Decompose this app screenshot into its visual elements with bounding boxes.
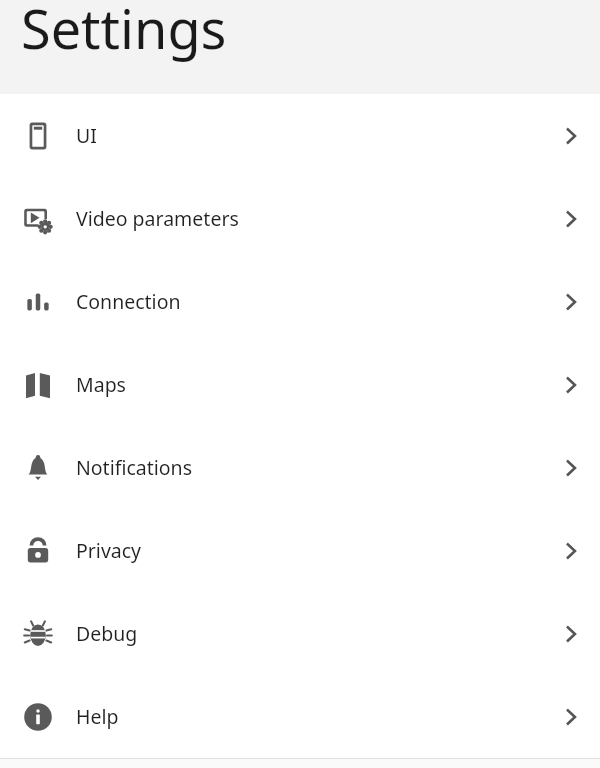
button[interactable]: Connection	[0, 260, 600, 343]
button[interactable]: Privacy	[0, 509, 600, 592]
button[interactable]: Debug	[0, 592, 600, 675]
button[interactable]: Maps	[0, 343, 600, 426]
staticText: Maps	[76, 371, 542, 398]
staticText: Connection	[76, 288, 542, 315]
staticText: Privacy	[76, 537, 542, 564]
staticText: Settings	[21, 0, 227, 65]
button[interactable]: Help	[0, 675, 600, 758]
button[interactable]: Notifications	[0, 426, 600, 509]
staticText: Notifications	[76, 454, 542, 481]
staticText: Help	[76, 703, 542, 730]
staticText: Video parameters	[76, 205, 542, 232]
button[interactable]: Video parameters	[0, 177, 600, 260]
staticText: Debug	[76, 620, 542, 647]
staticText: UI	[76, 122, 542, 149]
button[interactable]: UI	[0, 94, 600, 177]
